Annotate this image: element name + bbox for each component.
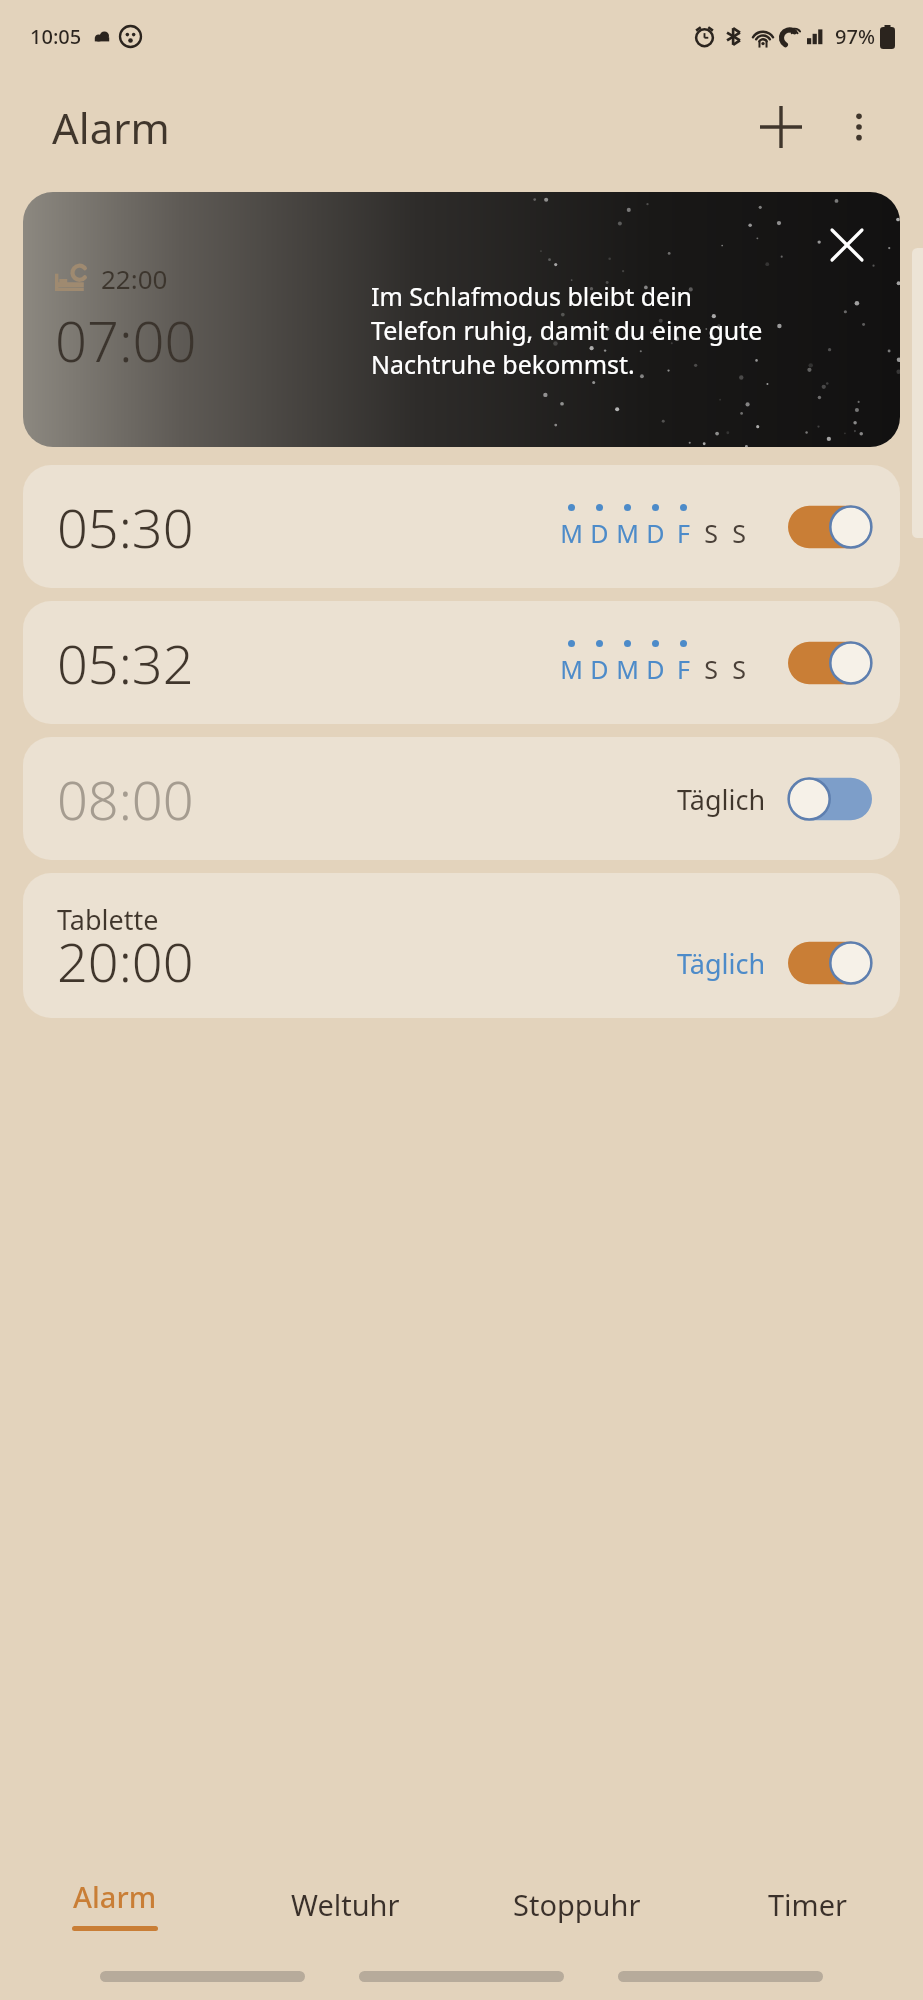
staticText: D <box>590 652 609 686</box>
staticText: Tablette <box>57 901 159 938</box>
button[interactable]: Stoppuhr <box>461 1859 692 1949</box>
staticText: M <box>560 516 583 550</box>
staticText: S <box>732 516 746 550</box>
button[interactable]: Alarm <box>0 1859 230 1949</box>
button[interactable]: 22:00 <box>23 192 900 447</box>
button[interactable]: Alarm on <box>788 940 872 986</box>
staticText: M <box>616 652 639 686</box>
button[interactable]: More options <box>831 99 887 155</box>
staticText: Täglich <box>677 781 766 818</box>
button[interactable]: 05:32 <box>23 601 900 724</box>
staticText: 08:00 <box>57 762 194 836</box>
button[interactable]: 08:00 <box>23 737 900 860</box>
button[interactable]: Alarm on <box>788 504 872 550</box>
staticText: 05:30 <box>57 490 194 564</box>
staticText: M <box>616 516 639 550</box>
button[interactable]: Close <box>820 218 874 272</box>
staticText: Alarm <box>73 1877 157 1916</box>
staticText: Weltuhr <box>291 1885 400 1924</box>
button[interactable]: 05:30 <box>23 465 900 588</box>
staticText: M <box>560 652 583 686</box>
staticText: Täglich <box>677 945 766 982</box>
staticText: 22:00 <box>101 261 168 296</box>
staticText: 05:32 <box>57 626 194 700</box>
staticText: F <box>677 652 690 686</box>
staticText: 10:05 <box>30 23 82 50</box>
staticText: 07:00 <box>55 302 197 378</box>
staticText: Timer <box>768 1885 848 1924</box>
staticText: S <box>704 652 718 686</box>
staticText: Alarm <box>52 99 170 156</box>
staticText: D <box>646 516 665 550</box>
button[interactable]: Alarm on <box>788 640 872 686</box>
button[interactable]: Weltuhr <box>230 1859 461 1949</box>
button[interactable]: Tablette <box>23 873 900 1018</box>
staticText: 20:00 <box>57 924 194 998</box>
staticText: F <box>677 516 690 550</box>
staticText: S <box>704 516 718 550</box>
button[interactable]: Timer <box>692 1859 923 1949</box>
staticText: D <box>590 516 609 550</box>
staticText: 97% <box>835 23 875 50</box>
button[interactable]: Add alarm <box>749 95 813 159</box>
button[interactable]: Alarm off <box>788 776 872 822</box>
staticText: S <box>732 652 746 686</box>
staticText: Stoppuhr <box>513 1885 641 1924</box>
staticText: Im Schlafmodus bleibt dein Telefon ruhig… <box>371 279 771 381</box>
staticText: D <box>646 652 665 686</box>
